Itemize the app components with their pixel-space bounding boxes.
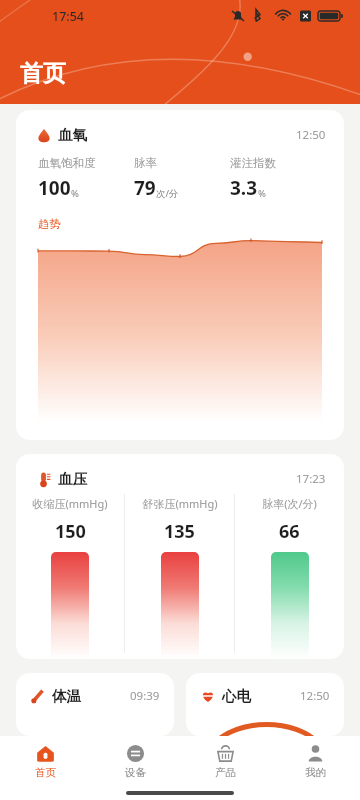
staticText: 3.3 — [230, 175, 258, 201]
button[interactable]: 首页 — [0, 736, 90, 786]
button[interactable]: 血氧 — [16, 110, 344, 440]
staticText: 我的 — [305, 766, 326, 779]
staticText: 产品 — [215, 766, 236, 779]
staticText: 血压 — [58, 470, 87, 488]
staticText: 12:50 — [296, 127, 326, 143]
staticText: 体温 — [52, 687, 81, 705]
button[interactable]: 心电 — [186, 673, 344, 736]
staticText: 次/分 — [156, 187, 179, 200]
staticText: 100 — [38, 175, 71, 201]
button[interactable]: 血压 — [16, 454, 344, 659]
staticText: 首页 — [20, 59, 66, 88]
staticText: 收缩压(mmHg) — [32, 496, 108, 511]
staticText: 舒张压(mmHg) — [142, 496, 218, 511]
staticText: 17:23 — [296, 471, 326, 487]
staticText: 脉率 — [134, 156, 157, 170]
button[interactable]: 我的 — [270, 736, 360, 786]
button[interactable]: 设备 — [90, 736, 180, 786]
staticText: 心电 — [222, 687, 251, 705]
other: 我的 — [306, 744, 325, 763]
button[interactable]: 体温 — [16, 673, 174, 736]
staticText: % — [258, 187, 266, 200]
staticText: 17:54 — [52, 8, 85, 25]
staticText: 150 — [55, 519, 86, 544]
other: 设备 — [126, 744, 145, 763]
staticText: 灌注指数 — [230, 156, 276, 170]
staticText: 趋势 — [38, 217, 61, 231]
staticText: 首页 — [35, 766, 56, 779]
staticText: 脉率(次/分) — [262, 496, 317, 511]
button[interactable]: 产品 — [180, 736, 270, 786]
other: 产品 — [216, 744, 235, 763]
staticText: 血氧饱和度 — [38, 156, 96, 170]
staticText: 79 — [134, 175, 156, 201]
other: 首页 — [36, 744, 55, 763]
staticText: 12:50 — [300, 688, 330, 704]
staticText: 135 — [164, 519, 195, 544]
staticText: 血氧 — [58, 126, 87, 144]
staticText: 66 — [279, 519, 300, 544]
staticText: % — [71, 187, 79, 200]
staticText: 设备 — [125, 766, 146, 779]
staticText: 09:39 — [130, 688, 160, 704]
